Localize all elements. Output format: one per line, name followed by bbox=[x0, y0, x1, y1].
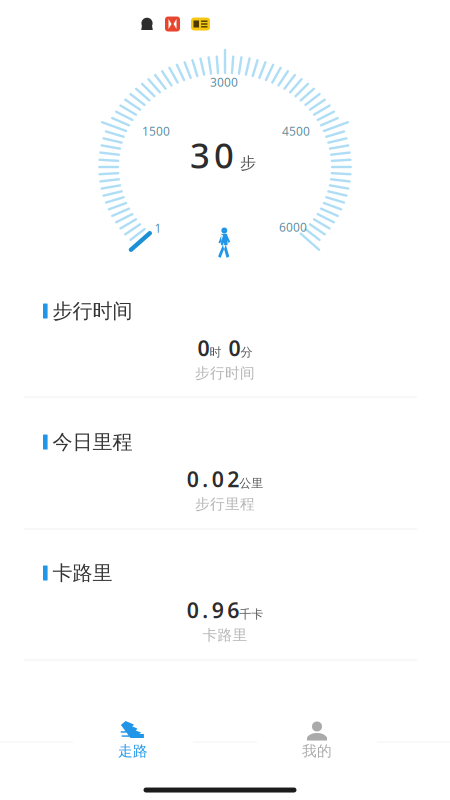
staticText: 0.96 bbox=[187, 596, 239, 624]
staticText: 步行时间 bbox=[195, 364, 255, 382]
staticText: 0 bbox=[228, 334, 240, 362]
staticText: 卡路里 bbox=[53, 561, 113, 585]
staticText: 今日里程 bbox=[53, 430, 133, 454]
staticText: 1500 bbox=[142, 123, 170, 139]
staticText: 1 bbox=[154, 220, 161, 236]
staticText: 时 bbox=[209, 345, 221, 360]
staticText: 0 bbox=[214, 132, 234, 178]
staticText: 千卡 bbox=[239, 607, 263, 622]
staticText: 卡路里 bbox=[202, 626, 247, 644]
staticText: 步行里程 bbox=[195, 495, 255, 513]
staticText: 步 bbox=[240, 153, 256, 173]
staticText: 分 bbox=[240, 345, 252, 360]
staticText: 步行时间 bbox=[53, 299, 133, 323]
staticText: 0.02 bbox=[187, 465, 239, 493]
staticText: 4500 bbox=[282, 123, 310, 139]
staticText: 走路 bbox=[118, 742, 148, 760]
staticText: 我的 bbox=[302, 742, 332, 760]
staticText: 6000 bbox=[279, 219, 307, 235]
staticText: 公里 bbox=[239, 476, 263, 491]
button[interactable]: 走路 bbox=[73, 717, 193, 775]
button[interactable]: 我的 bbox=[257, 717, 377, 775]
staticText: 3000 bbox=[210, 74, 238, 90]
staticText: 3 bbox=[190, 132, 210, 178]
staticText: 0 bbox=[197, 334, 209, 362]
